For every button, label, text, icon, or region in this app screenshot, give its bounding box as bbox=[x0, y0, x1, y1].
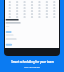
staticText: Stay organised bbox=[24, 66, 40, 69]
staticText: Smart scheduling for your team bbox=[11, 60, 54, 64]
